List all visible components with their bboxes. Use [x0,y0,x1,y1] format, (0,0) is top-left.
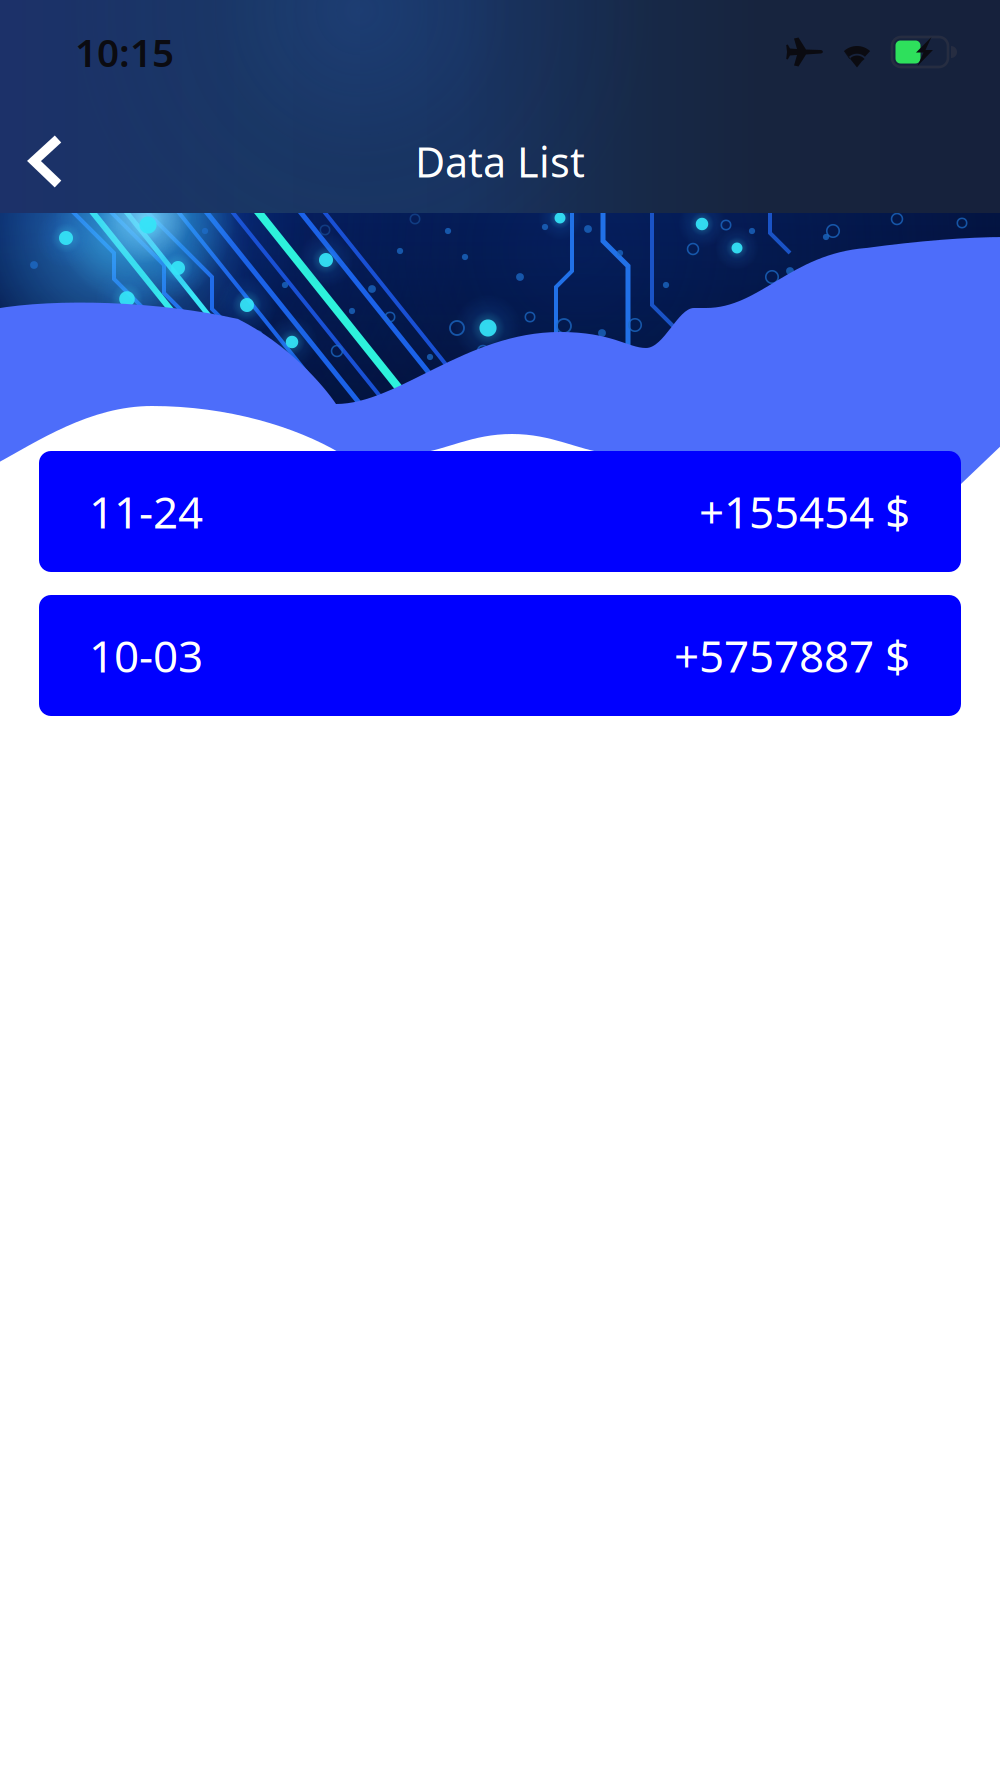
button[interactable]: 10-03 [39,595,961,716]
staticText: 10:15 [75,26,174,78]
button[interactable]: Back [0,110,92,213]
staticText: Data List [415,134,585,189]
staticText: 11-24 [89,482,203,541]
staticText: 10-03 [89,626,203,685]
staticText: +155454 $ [699,482,910,541]
button[interactable]: 11-24 [39,451,961,572]
staticText: +5757887 $ [674,626,910,685]
